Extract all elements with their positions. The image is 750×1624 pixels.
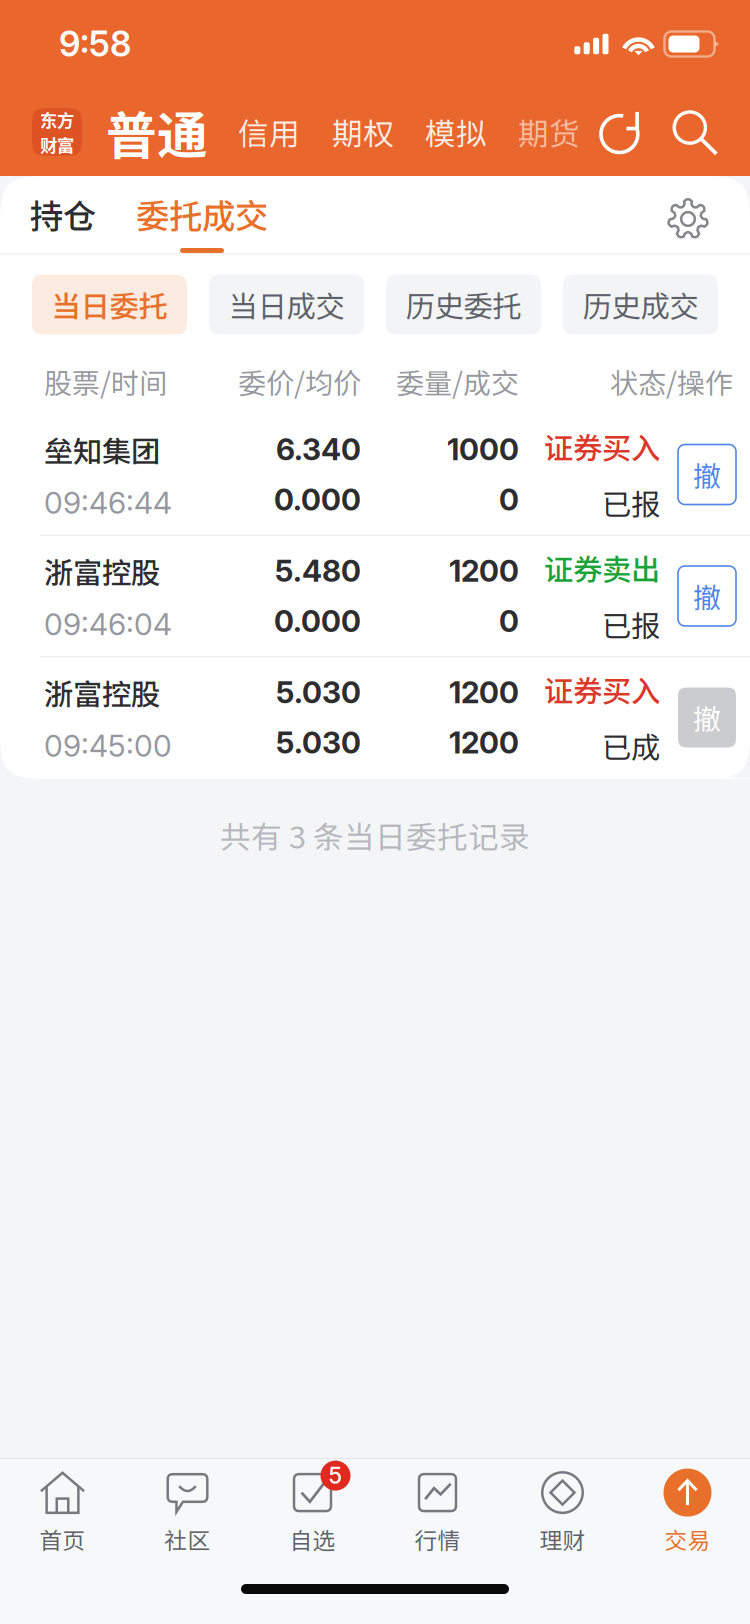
staticText: 期货: [518, 110, 580, 154]
staticText: 09:45:00: [44, 728, 172, 764]
staticText: 模拟: [425, 110, 487, 154]
staticText: 09:46:04: [44, 606, 172, 642]
button[interactable]: 理财: [500, 1470, 625, 1555]
button[interactable]: 当日成交: [209, 274, 364, 334]
staticText: 0.000: [274, 481, 361, 518]
staticText: 1000: [447, 431, 519, 467]
staticText: 当日委托: [51, 283, 167, 326]
button[interactable]: 模拟: [394, 110, 487, 154]
staticText: 当日成交: [228, 283, 344, 326]
staticText: 理财: [539, 1523, 585, 1555]
staticText: 委价/均价: [238, 361, 361, 402]
staticText: 证券买入: [544, 425, 660, 467]
staticText: 0: [499, 481, 519, 518]
staticText: 1200: [449, 724, 519, 761]
staticText: 0.000: [274, 603, 361, 639]
button[interactable]: 东方财富: [32, 108, 82, 156]
button[interactable]: 社区: [125, 1470, 250, 1555]
button[interactable]: 撤: [678, 687, 736, 747]
staticText: 交易: [664, 1523, 710, 1555]
staticText: 撤: [693, 454, 721, 495]
staticText: 1200: [449, 553, 519, 589]
staticText: 财富: [40, 132, 74, 157]
button[interactable]: 撤: [678, 566, 736, 626]
button[interactable]: 搜索: [648, 106, 720, 158]
staticText: 证券卖出: [544, 546, 660, 589]
staticText: 自选: [289, 1523, 335, 1555]
button[interactable]: 当日委托: [32, 274, 187, 334]
staticText: 状态/操作: [610, 361, 733, 402]
button[interactable]: 刷新: [596, 106, 648, 158]
staticText: 1200: [449, 674, 519, 710]
staticText: 已成: [602, 724, 660, 767]
button[interactable]: 首页: [0, 1470, 125, 1555]
staticText: 历史成交: [582, 283, 698, 326]
staticText: 浙富控股: [44, 550, 160, 592]
staticText: 证券买入: [544, 668, 660, 710]
staticText: 东方: [40, 107, 74, 132]
staticText: 社区: [164, 1523, 210, 1555]
staticText: 垒知集团: [44, 428, 160, 471]
staticText: 09:46:44: [44, 485, 172, 521]
staticText: 历史委托: [405, 283, 521, 326]
button[interactable]: 委托成交: [96, 198, 268, 253]
staticText: 5.480: [275, 553, 361, 589]
staticText: 6.340: [276, 431, 361, 467]
button[interactable]: 历史委托: [386, 274, 541, 334]
staticText: 已报: [602, 481, 660, 524]
staticText: 已报: [602, 603, 660, 645]
button[interactable]: 历史成交: [563, 274, 718, 334]
staticText: 浙富控股: [44, 671, 160, 714]
staticText: 0: [499, 603, 519, 639]
staticText: 行情: [414, 1523, 460, 1555]
button[interactable]: 期货: [487, 110, 580, 154]
button[interactable]: 普通: [82, 95, 208, 169]
staticText: 股票/时间: [44, 361, 167, 402]
staticText: 5.030: [276, 674, 361, 710]
staticText: 9:58: [59, 23, 131, 65]
staticText: 共有 3 条当日委托记录: [220, 813, 530, 857]
staticText: 撤: [693, 576, 721, 616]
button[interactable]: 5: [250, 1470, 375, 1555]
staticText: 5.030: [276, 724, 361, 761]
staticText: 委托成交: [136, 190, 268, 238]
staticText: 期权: [332, 110, 394, 154]
staticText: 信用: [238, 110, 300, 154]
button[interactable]: 行情: [375, 1470, 500, 1555]
staticText: 首页: [39, 1523, 85, 1555]
button[interactable]: 交易: [625, 1470, 750, 1555]
staticText: 5: [328, 1462, 342, 1489]
button[interactable]: 期权: [300, 110, 394, 154]
staticText: 委量/成交: [396, 361, 519, 402]
button[interactable]: 信用: [208, 110, 300, 154]
staticText: 撤: [693, 697, 721, 738]
button[interactable]: 撤: [678, 444, 736, 504]
staticText: 普通: [106, 95, 208, 169]
button[interactable]: 持仓: [30, 198, 96, 253]
button[interactable]: 设置: [666, 197, 710, 253]
staticText: 持仓: [30, 190, 96, 238]
